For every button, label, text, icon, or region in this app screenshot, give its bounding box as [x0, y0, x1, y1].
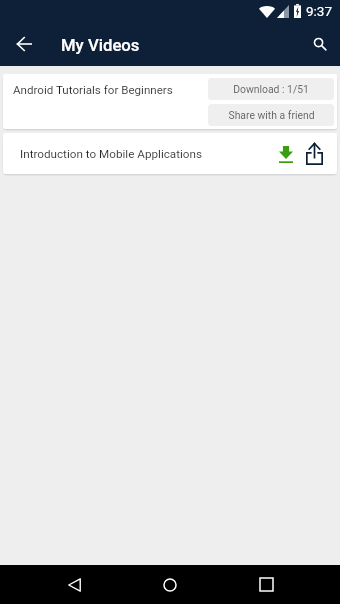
- staticText: My Videos: [61, 36, 140, 56]
- staticText: Download : 1/51: [233, 83, 309, 95]
- button[interactable]: Home: [150, 565, 190, 604]
- button[interactable]: Android Tutorials for Beginners: [3, 78, 337, 129]
- button[interactable]: Back: [54, 565, 94, 604]
- staticText: Share with a friend: [228, 109, 315, 121]
- button[interactable]: Search: [304, 28, 336, 60]
- button[interactable]: Recents: [246, 565, 286, 604]
- staticText: Android Tutorials for Beginners: [13, 83, 208, 97]
- button[interactable]: Share with a friend: [208, 104, 334, 126]
- staticText: 9:37: [306, 3, 333, 19]
- button[interactable]: Share: [299, 139, 329, 169]
- button[interactable]: Download : 1/51: [208, 78, 334, 100]
- staticText: Introduction to Mobile Applications: [20, 147, 273, 161]
- button[interactable]: Back: [7, 27, 41, 61]
- button[interactable]: Introduction to Mobile Applications: [3, 133, 337, 174]
- button[interactable]: Download: [273, 139, 299, 169]
